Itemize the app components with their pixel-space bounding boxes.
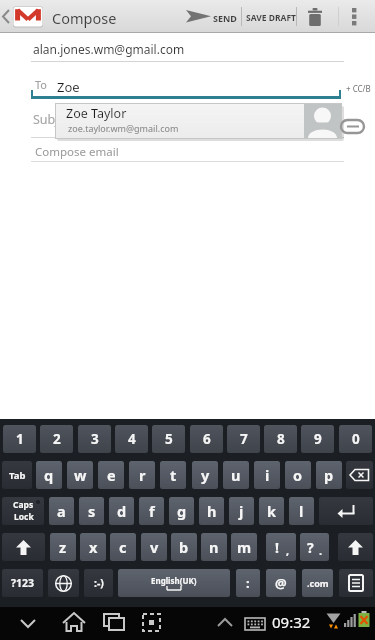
button[interactable] <box>48 569 79 597</box>
button[interactable]: 6 <box>190 425 223 453</box>
staticText: i <box>265 465 270 485</box>
staticText: k <box>267 501 276 521</box>
button[interactable]: k <box>259 497 284 525</box>
staticText: alan.jones.wm@gmail.com <box>33 41 185 57</box>
button[interactable] <box>60 607 88 640</box>
button[interactable] <box>319 497 373 525</box>
staticText: r <box>139 465 146 485</box>
staticText: 09:32 <box>272 612 311 632</box>
staticText: Tab <box>9 469 26 482</box>
button[interactable]: :-) <box>84 569 113 597</box>
staticText: x <box>89 537 98 557</box>
staticText: g <box>177 501 187 521</box>
button[interactable]: z <box>50 533 76 561</box>
staticText: l <box>299 501 304 521</box>
staticText: o <box>293 465 303 485</box>
button[interactable] <box>344 4 364 30</box>
staticText: 3 <box>91 430 99 448</box>
staticText: ?123 <box>11 576 35 590</box>
button[interactable]: r <box>129 461 155 489</box>
button[interactable]: s <box>79 497 104 525</box>
button[interactable] <box>303 6 327 28</box>
button[interactable]: .com <box>302 569 333 597</box>
staticText: SEND <box>213 12 237 24</box>
button[interactable]: g <box>169 497 194 525</box>
button[interactable]: o <box>285 461 311 489</box>
button[interactable] <box>338 533 373 561</box>
staticText: 4 <box>128 430 136 448</box>
button[interactable]: e <box>98 461 124 489</box>
button[interactable]: d <box>109 497 134 525</box>
button[interactable]: j <box>229 497 254 525</box>
button[interactable]: l <box>289 497 314 525</box>
staticText: Caps <box>13 499 34 511</box>
button[interactable] <box>2 533 45 561</box>
button[interactable] <box>13 6 43 27</box>
button[interactable]: t <box>160 461 186 489</box>
button[interactable]: : <box>236 569 260 597</box>
button[interactable] <box>211 607 239 640</box>
button[interactable]: SEND <box>184 4 239 30</box>
button[interactable] <box>138 607 166 640</box>
staticText: 8 <box>277 430 285 448</box>
button[interactable]: Zoe Taylor <box>55 103 342 139</box>
staticText: + CC/B <box>346 83 371 94</box>
button[interactable] <box>346 461 373 489</box>
staticText: u <box>231 465 241 485</box>
staticText: y <box>201 465 210 485</box>
button[interactable]: q <box>36 461 62 489</box>
staticText: 0 <box>352 430 360 448</box>
staticText: 6 <box>203 430 211 448</box>
button[interactable]: n <box>201 533 227 561</box>
button[interactable]: 3 <box>78 425 111 453</box>
staticText: h <box>207 501 217 521</box>
button[interactable]: y <box>192 461 218 489</box>
button[interactable]: 1 <box>3 425 36 453</box>
button[interactable] <box>14 607 42 640</box>
staticText: e <box>107 465 116 485</box>
button[interactable] <box>243 607 269 640</box>
button[interactable]: 8 <box>264 425 297 453</box>
staticText: 1 <box>16 430 24 448</box>
staticText: SAVE DRAFT <box>246 12 296 24</box>
button[interactable]: i <box>254 461 280 489</box>
button[interactable]: @ <box>266 569 296 597</box>
staticText: t <box>170 465 177 485</box>
button[interactable]: ? <box>300 533 329 561</box>
button[interactable]: c <box>110 533 136 561</box>
button[interactable]: English(UK) <box>118 569 230 597</box>
staticText: zoe.taylor.wm@gmail.com <box>68 122 179 134</box>
button[interactable]: w <box>67 461 93 489</box>
button[interactable]: 2 <box>40 425 73 453</box>
button[interactable]: b <box>171 533 197 561</box>
button[interactable]: a <box>49 497 74 525</box>
staticText: Compose <box>52 8 117 28</box>
button[interactable]: 4 <box>115 425 148 453</box>
button[interactable]: v <box>141 533 167 561</box>
staticText: a <box>57 501 66 521</box>
button[interactable]: 5 <box>152 425 185 453</box>
button[interactable]: p <box>316 461 342 489</box>
button[interactable]: m <box>231 533 257 561</box>
button[interactable]: Tab <box>2 461 32 489</box>
button[interactable]: x <box>80 533 106 561</box>
button[interactable]: 0 <box>339 425 372 453</box>
button[interactable]: 7 <box>227 425 260 453</box>
button[interactable]: 9 <box>301 425 334 453</box>
button[interactable]: h <box>199 497 224 525</box>
button[interactable]: SAVE DRAFT <box>243 4 299 30</box>
button[interactable] <box>339 569 373 597</box>
button[interactable] <box>100 607 128 640</box>
button[interactable]: ! <box>266 533 296 561</box>
button[interactable]: ?123 <box>2 569 43 597</box>
staticText: f <box>149 501 155 521</box>
button[interactable]: f <box>139 497 164 525</box>
button[interactable]: u <box>223 461 249 489</box>
staticText: ! <box>275 538 279 557</box>
staticText: :-) <box>94 576 104 590</box>
staticText: Zoe <box>57 78 80 96</box>
staticText: Zoe Taylor <box>66 105 127 122</box>
staticText: q <box>44 465 54 485</box>
staticText: @ <box>275 574 287 592</box>
button[interactable]: Caps <box>2 497 44 525</box>
